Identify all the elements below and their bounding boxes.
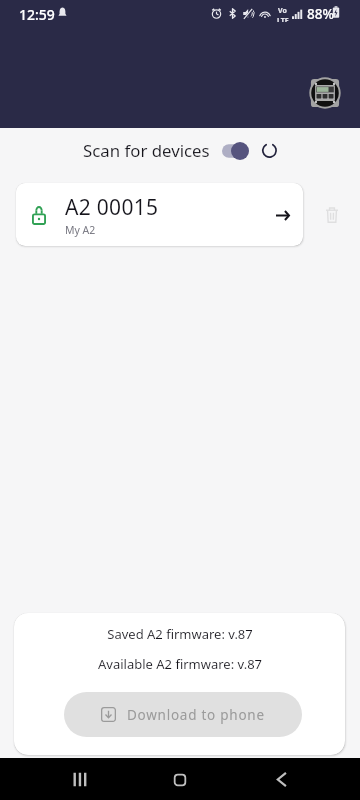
staticText: Download to phone — [127, 706, 265, 724]
button[interactable]: Home — [173, 773, 187, 787]
button[interactable]: Download to phone — [64, 692, 302, 737]
staticText: 12:59 — [19, 5, 55, 24]
button[interactable]: Recents — [72, 772, 87, 787]
staticText: My A2 — [65, 223, 96, 237]
button[interactable]: Scan for devices toggle — [222, 142, 249, 160]
staticText: LTE — [277, 16, 289, 22]
staticText: Available A2 firmware: v.87 — [98, 655, 262, 673]
button[interactable]: A2 00015 — [16, 183, 303, 246]
staticText: Scan for devices — [83, 139, 210, 162]
button[interactable]: Back — [275, 772, 289, 787]
staticText: 88% — [307, 5, 334, 23]
button[interactable]: Device — [309, 77, 341, 109]
staticText: A2 00015 — [65, 193, 159, 222]
staticText: Vo — [278, 6, 287, 16]
staticText: Saved A2 firmware: v.87 — [107, 625, 253, 643]
